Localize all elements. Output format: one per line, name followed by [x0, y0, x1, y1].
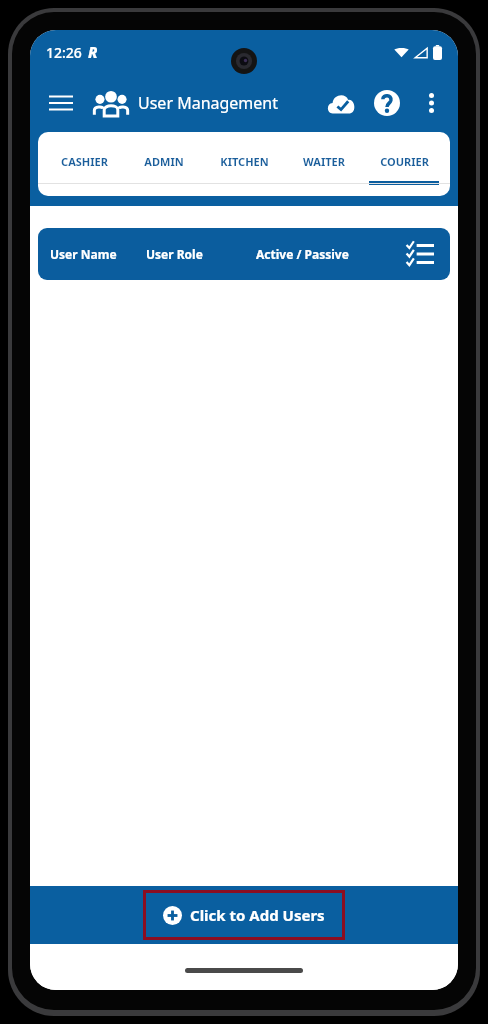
- staticText: Active / Passive: [256, 246, 349, 262]
- button[interactable]: More options: [410, 82, 452, 124]
- button[interactable]: Cloud sync status: [318, 80, 364, 126]
- staticText: ADMIN: [144, 154, 184, 169]
- staticText: CASHIER: [61, 154, 108, 169]
- staticText: User Role: [146, 246, 203, 262]
- button[interactable]: ADMIN: [124, 132, 204, 196]
- button[interactable]: User Name: [38, 228, 450, 280]
- staticText: KITCHEN: [220, 154, 269, 169]
- button[interactable]: Click to Add Users: [163, 890, 325, 940]
- staticText: Click to Add Users: [190, 905, 325, 925]
- staticText: COURIER: [380, 154, 429, 169]
- staticText: WAITER: [303, 154, 345, 169]
- button[interactable]: WAITER: [284, 132, 364, 196]
- button[interactable]: KITCHEN: [204, 132, 284, 196]
- button[interactable]: CASHIER: [44, 132, 124, 196]
- staticText: User Name: [50, 246, 117, 262]
- staticText: 12:26: [46, 43, 82, 62]
- staticText: R: [88, 42, 98, 62]
- button[interactable]: Open navigation menu: [38, 80, 84, 126]
- staticText: User Management: [138, 92, 279, 114]
- button[interactable]: COURIER: [364, 132, 444, 196]
- button[interactable]: Help: [364, 80, 410, 126]
